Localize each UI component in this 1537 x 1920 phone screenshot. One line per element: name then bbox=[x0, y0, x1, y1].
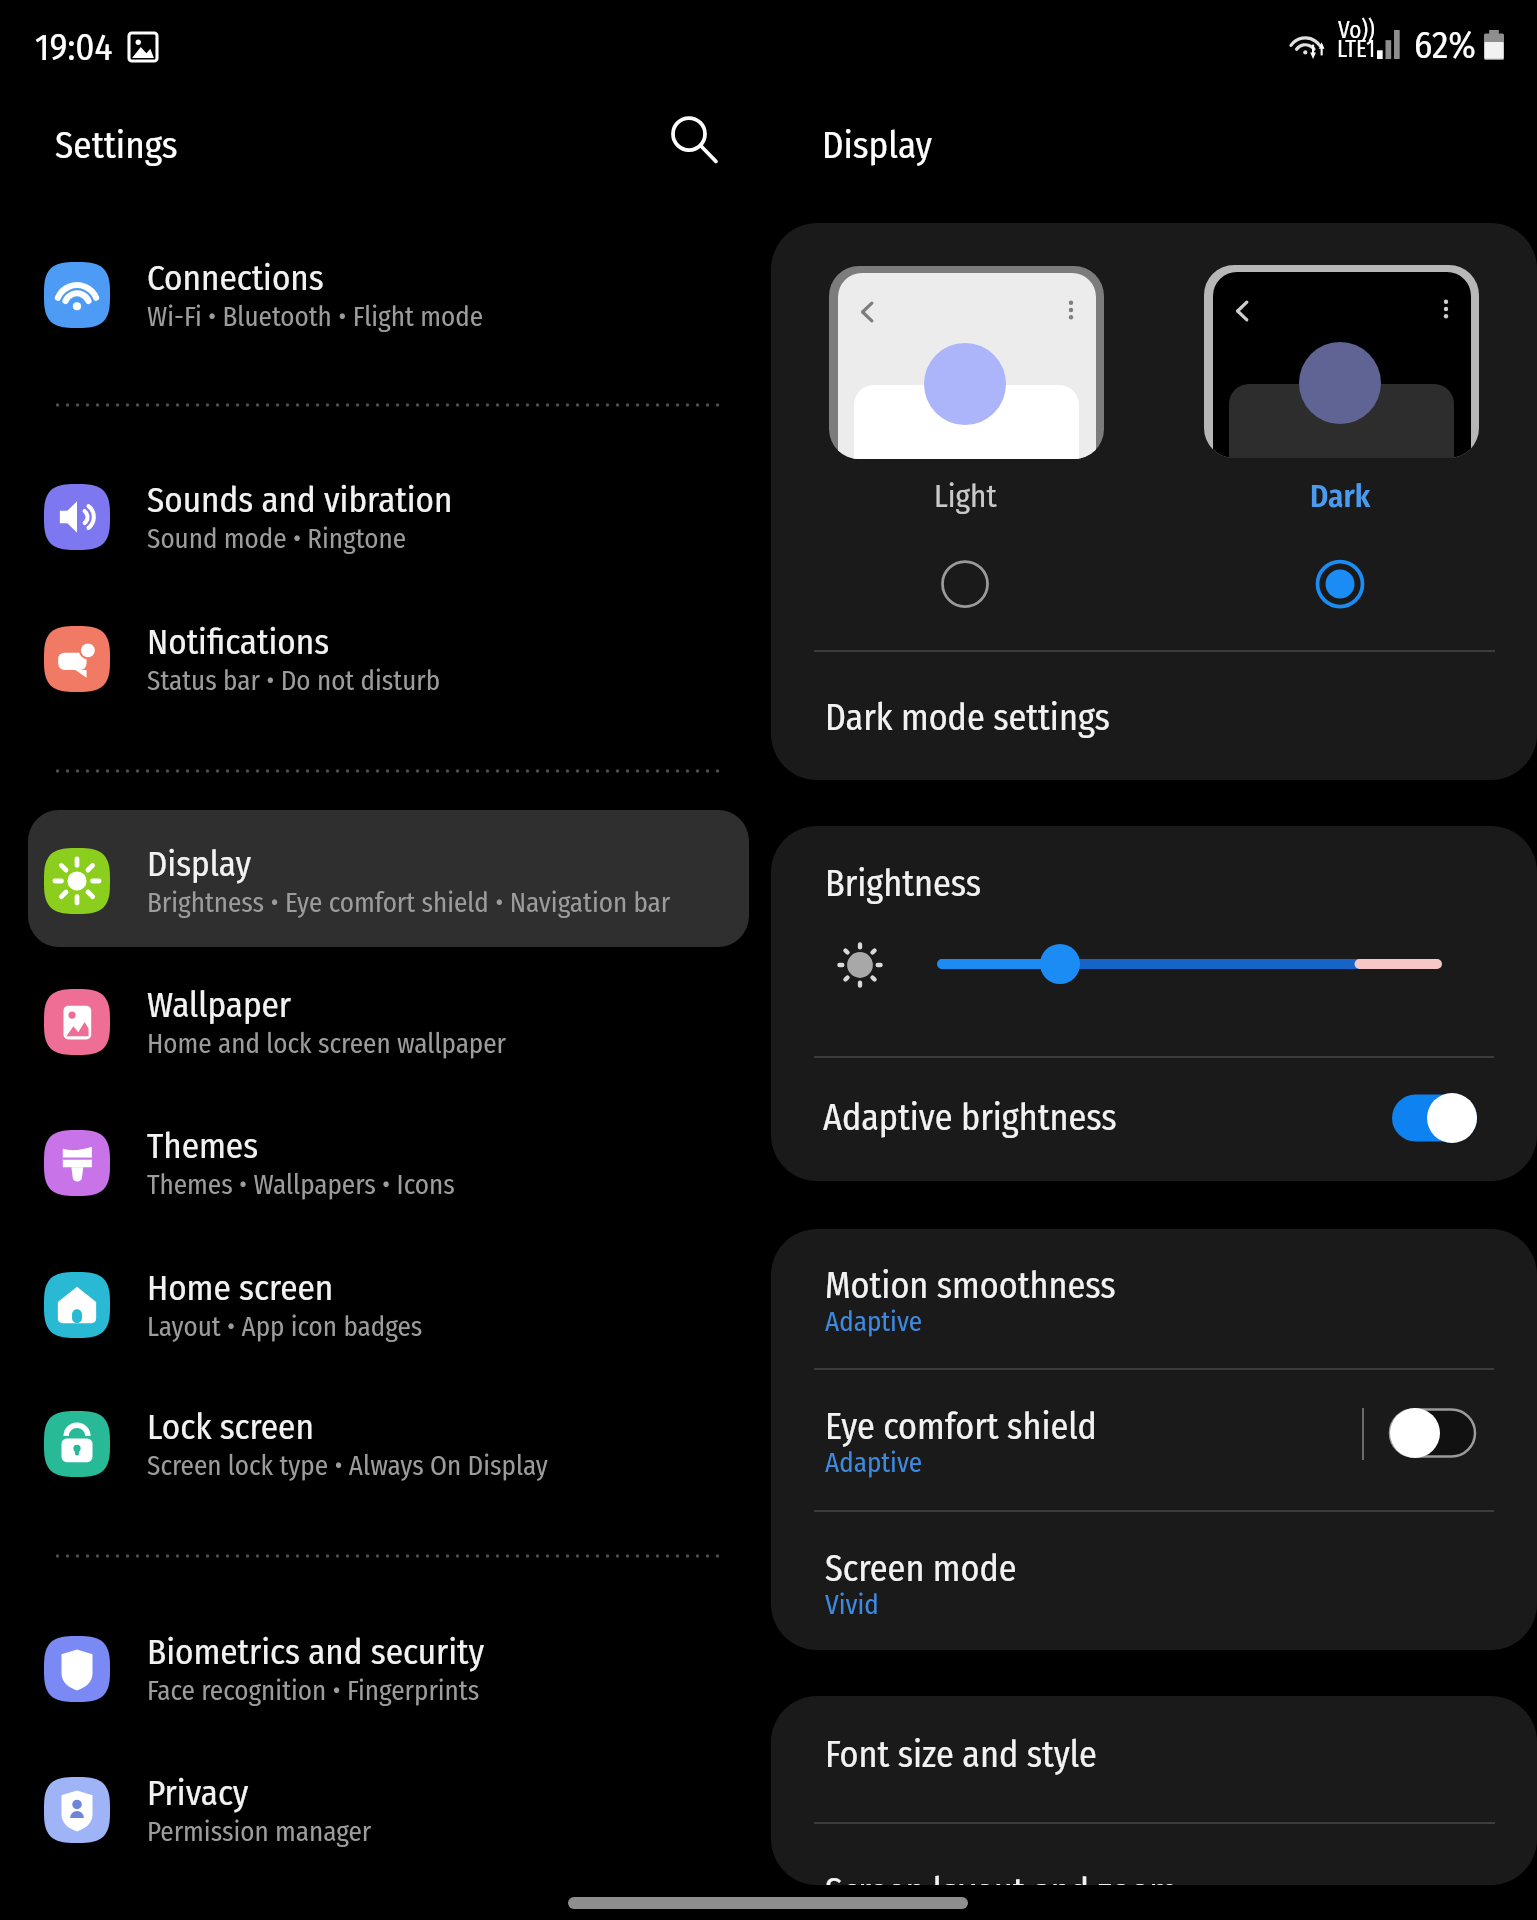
button[interactable]: Search bbox=[652, 98, 736, 182]
staticText: Biometrics and security bbox=[147, 1631, 485, 1673]
staticText: 19:04 bbox=[35, 25, 113, 69]
staticText: Vo)) bbox=[1338, 16, 1375, 44]
staticText: LTE1 bbox=[1337, 35, 1376, 63]
staticText: Settings bbox=[55, 123, 178, 167]
staticText: Screen lock type • Always On Display bbox=[147, 1450, 548, 1482]
button[interactable]: Brightness slider bbox=[911, 924, 1471, 1004]
button[interactable]: Light theme bbox=[917, 536, 1013, 632]
button[interactable]: Screen layout and zoom bbox=[771, 1824, 1537, 1885]
staticText: Sound mode • Ringtone bbox=[147, 523, 406, 555]
button[interactable]: Font size and style bbox=[771, 1696, 1537, 1822]
staticText: Brightness • Eye comfort shield • Naviga… bbox=[147, 887, 671, 919]
staticText: Connections bbox=[147, 257, 324, 299]
staticText: Adaptive bbox=[825, 1447, 923, 1479]
staticText: Dark mode settings bbox=[825, 696, 1110, 739]
staticText: Vivid bbox=[825, 1589, 879, 1621]
staticText: Permission manager bbox=[147, 1816, 372, 1848]
button[interactable]: Wallpaper bbox=[28, 951, 749, 1088]
button[interactable]: Home screen bbox=[28, 1234, 749, 1371]
staticText: Light bbox=[934, 478, 997, 515]
button[interactable]: Off bbox=[1390, 1408, 1475, 1458]
button[interactable]: Display bbox=[28, 810, 749, 947]
button[interactable]: Biometrics and security bbox=[28, 1598, 749, 1735]
staticText: Adaptive brightness bbox=[823, 1096, 1117, 1139]
staticText: Themes bbox=[147, 1125, 259, 1167]
button[interactable]: Connections bbox=[28, 224, 749, 361]
staticText: Adaptive bbox=[825, 1306, 923, 1338]
button[interactable]: Privacy bbox=[28, 1739, 749, 1876]
staticText: Dark bbox=[1310, 478, 1371, 515]
button[interactable]: Adaptive brightness bbox=[771, 1058, 1537, 1181]
staticText: Screen mode bbox=[825, 1547, 1017, 1590]
staticText: Notifications bbox=[147, 621, 330, 663]
button[interactable]: Light theme preview bbox=[838, 273, 1096, 459]
staticText: Themes • Wallpapers • Icons bbox=[147, 1169, 455, 1201]
staticText: Sounds and vibration bbox=[147, 479, 453, 521]
staticText: Privacy bbox=[147, 1772, 249, 1814]
button[interactable]: Dark mode settings bbox=[771, 652, 1537, 780]
staticText: Wallpaper bbox=[147, 984, 292, 1026]
button[interactable]: Dark theme preview bbox=[1213, 272, 1471, 458]
staticText: Face recognition • Fingerprints bbox=[147, 1675, 480, 1707]
staticText: Status bar • Do not disturb bbox=[147, 665, 441, 697]
staticText: Home and lock screen wallpaper bbox=[147, 1028, 506, 1060]
staticText: Motion smoothness bbox=[825, 1264, 1116, 1307]
staticText: Wi-Fi • Bluetooth • Flight mode bbox=[147, 301, 483, 333]
staticText: Lock screen bbox=[147, 1406, 314, 1448]
button[interactable]: Notifications bbox=[28, 588, 749, 725]
staticText: Font size and style bbox=[825, 1733, 1097, 1776]
button[interactable]: Screen mode bbox=[771, 1512, 1537, 1650]
button[interactable]: Themes bbox=[28, 1092, 749, 1229]
staticText: Eye comfort shield bbox=[825, 1405, 1097, 1448]
staticText: Home screen bbox=[147, 1267, 334, 1309]
staticText: 62% bbox=[1414, 23, 1477, 67]
staticText: Brightness bbox=[825, 862, 982, 905]
button[interactable]: Motion smoothness bbox=[771, 1229, 1537, 1368]
button[interactable]: Sounds and vibration bbox=[28, 446, 749, 583]
button[interactable]: Dark theme bbox=[1292, 536, 1388, 632]
staticText: Display bbox=[147, 843, 252, 885]
staticText: Display bbox=[822, 123, 932, 167]
button[interactable]: On bbox=[1392, 1093, 1477, 1143]
button[interactable]: Lock screen bbox=[28, 1373, 749, 1510]
staticText: Layout • App icon badges bbox=[147, 1311, 423, 1343]
staticText: Screen layout and zoom bbox=[825, 1870, 1178, 1885]
button[interactable]: Eye comfort shield bbox=[771, 1370, 1537, 1511]
